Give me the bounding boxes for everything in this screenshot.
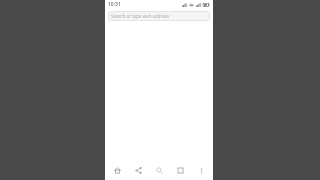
button[interactable]: Share bbox=[129, 161, 147, 179]
staticText: 10:31 bbox=[108, 1, 121, 8]
button[interactable]: More options bbox=[192, 161, 210, 179]
button[interactable]: Search bbox=[150, 161, 168, 179]
staticText: Search or type web address bbox=[111, 13, 170, 19]
button[interactable]: Tabs bbox=[171, 161, 189, 179]
button[interactable]: Home bbox=[108, 161, 126, 179]
button[interactable]: Search or type web address bbox=[108, 11, 210, 21]
